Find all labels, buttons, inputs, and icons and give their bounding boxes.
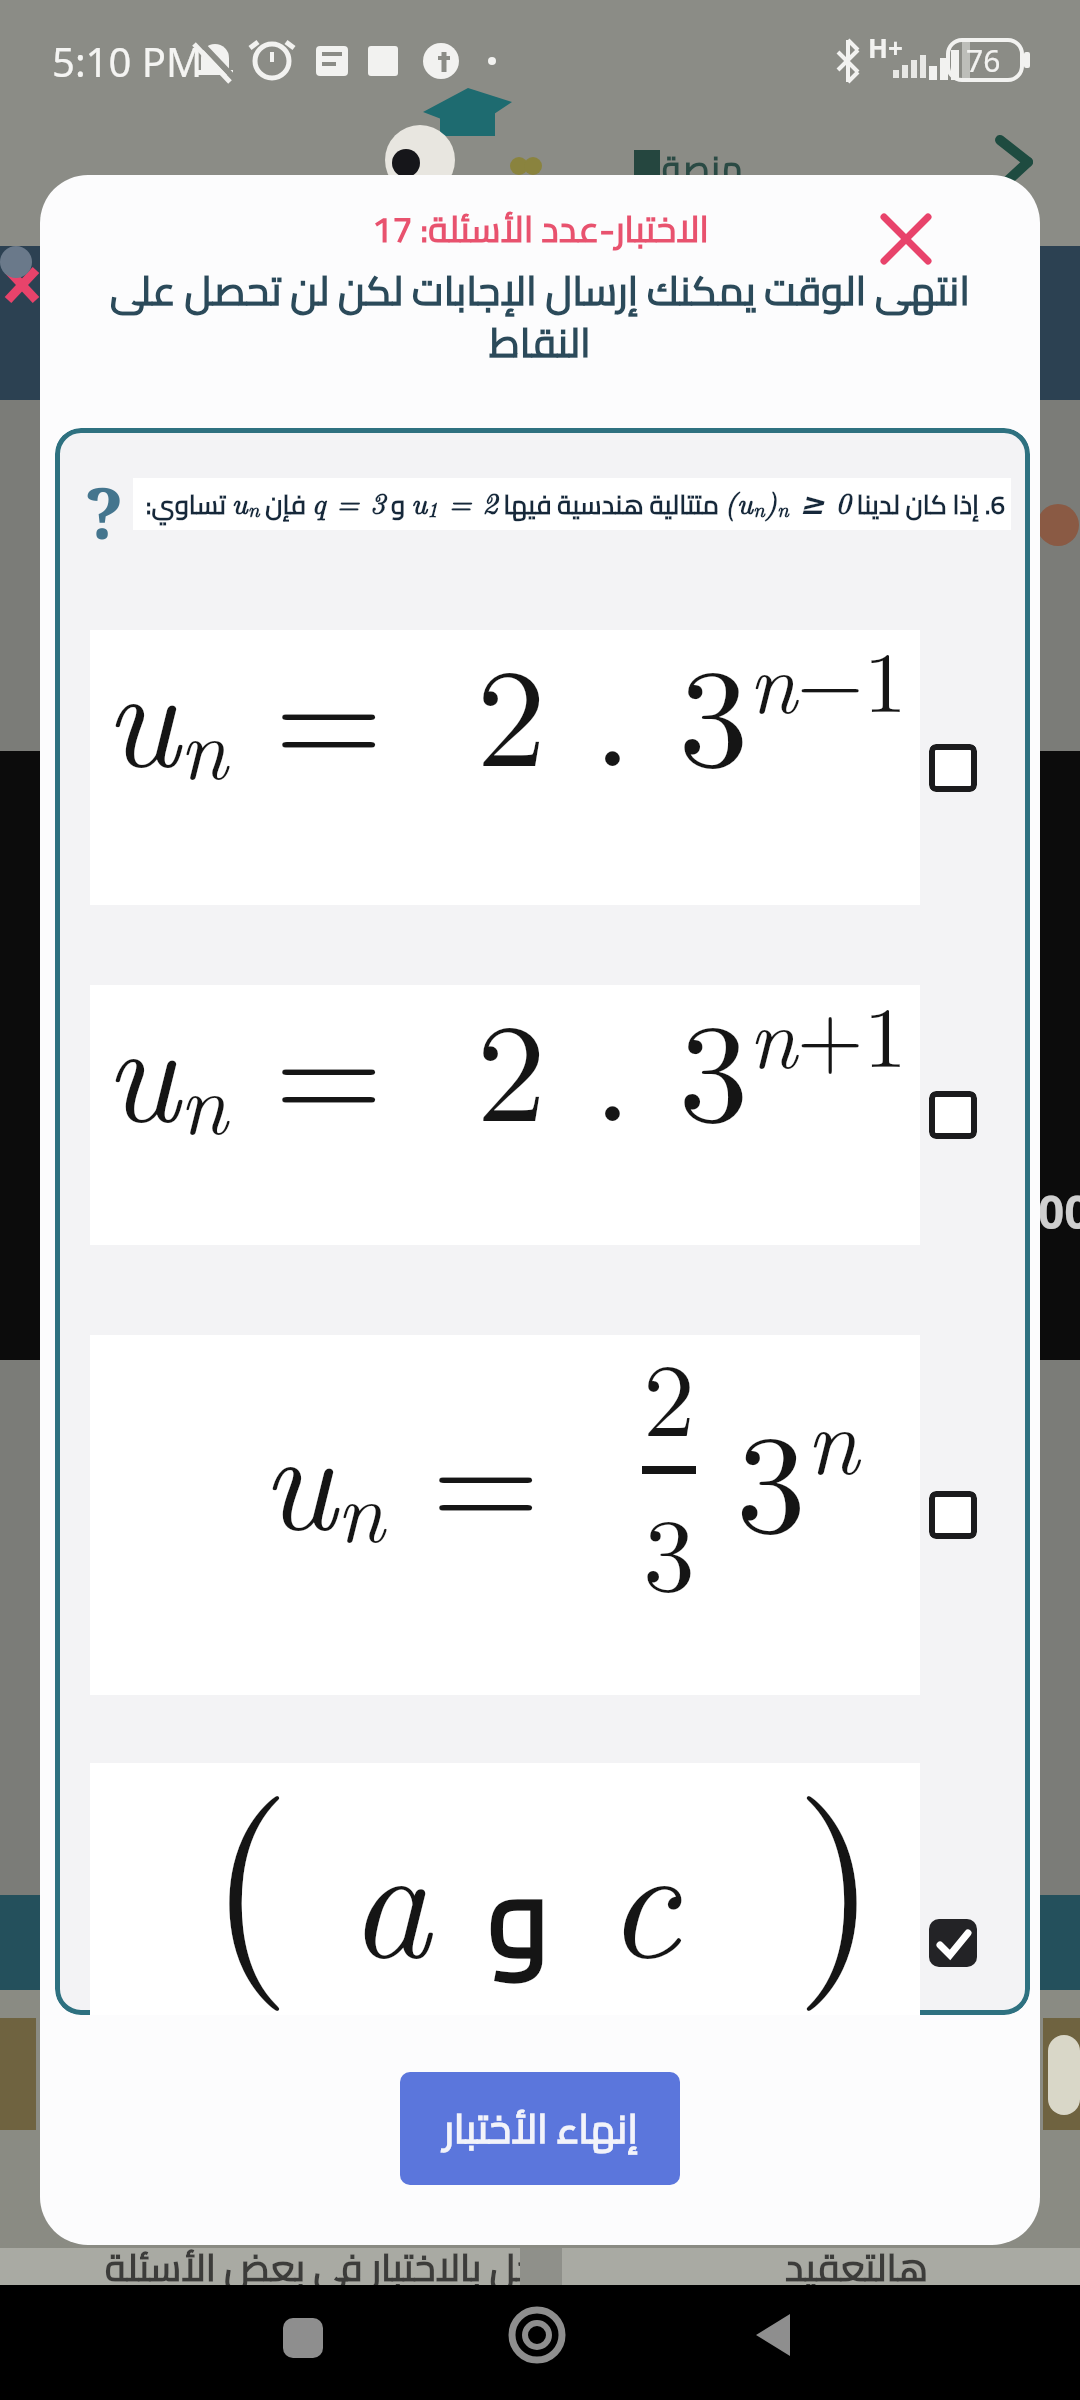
staticText: 76 bbox=[966, 40, 1001, 81]
staticText: ? bbox=[85, 464, 124, 559]
staticText: ⁦( a و c )⁩ bbox=[208, 1715, 879, 2015]
button[interactable]: إنهاء الأختبار bbox=[400, 2072, 680, 2185]
button[interactable] bbox=[929, 1091, 977, 1139]
staticText: إنهاء الأختبار bbox=[443, 2091, 638, 2166]
staticText: 3 bbox=[643, 1474, 696, 1621]
staticText: الاختبار-عدد الأسئلة: 17 bbox=[372, 195, 709, 262]
button[interactable] bbox=[929, 1491, 977, 1539]
staticText: 00 bbox=[1038, 1180, 1080, 1243]
staticText: H+ bbox=[868, 30, 903, 65]
staticText: un = bbox=[261, 1371, 587, 1569]
staticText: 2 bbox=[643, 1319, 696, 1466]
staticText: 5:10 PM bbox=[52, 34, 203, 88]
staticText: un = 2 . 3n+1 bbox=[104, 963, 907, 1161]
staticText: منصة bbox=[662, 136, 743, 200]
button[interactable] bbox=[876, 209, 936, 269]
staticText: انتهى الوقت يمكنك إرسال الإجابات لكن لن … bbox=[70, 253, 1010, 380]
button[interactable] bbox=[929, 744, 977, 792]
button[interactable]: ⁦( a و c )⁩ bbox=[90, 1763, 920, 2015]
staticText: حل بالاختبار في بعض الأسئلة bbox=[105, 2231, 538, 2302]
staticText: 6. إذا كان لدينا ⁦(un)n ≥ 0⁩ متتالية هند… bbox=[145, 480, 1005, 529]
button[interactable] bbox=[929, 1919, 977, 1967]
button[interactable]: un = bbox=[90, 1335, 920, 1695]
button[interactable]: un = 2 . 3n−1 bbox=[90, 630, 920, 905]
staticText: un = 2 . 3n−1 bbox=[104, 608, 907, 806]
staticText: 3n bbox=[736, 1368, 859, 1573]
staticText: هالتعقيد bbox=[785, 2231, 929, 2302]
button[interactable]: un = 2 . 3n+1 bbox=[90, 985, 920, 1245]
